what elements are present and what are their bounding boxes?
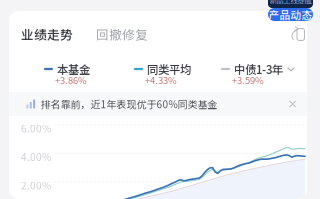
button[interactable]: 产品动态 (268, 8, 313, 21)
staticText: 本基金 (57, 61, 90, 77)
button[interactable]: 回撤修复 (96, 25, 148, 43)
staticText: 中债1-3年 (234, 61, 283, 77)
button[interactable]: Rotate to landscape (289, 25, 307, 43)
staticText: 排名靠前，近1年表现优于60%同类基金 (40, 97, 217, 111)
button[interactable]: 中债1-3年 (221, 63, 295, 85)
staticText: +4.33% (145, 73, 177, 87)
staticText: 业绩走势 (21, 25, 73, 43)
staticText: 6.00% (21, 121, 51, 135)
staticText: 同类平均 (147, 61, 191, 77)
button[interactable]: 业绩走势 (21, 25, 73, 43)
staticText: 回撤修复 (96, 25, 148, 43)
staticText: 新品上线提醒 (269, 0, 311, 5)
staticText: 2.00% (21, 178, 51, 192)
button[interactable]: Close (287, 99, 298, 109)
staticText: +3.86% (55, 73, 87, 87)
staticText: 4.00% (21, 149, 51, 164)
staticText: +3.59% (232, 73, 264, 87)
staticText: 产品动态 (268, 7, 312, 22)
